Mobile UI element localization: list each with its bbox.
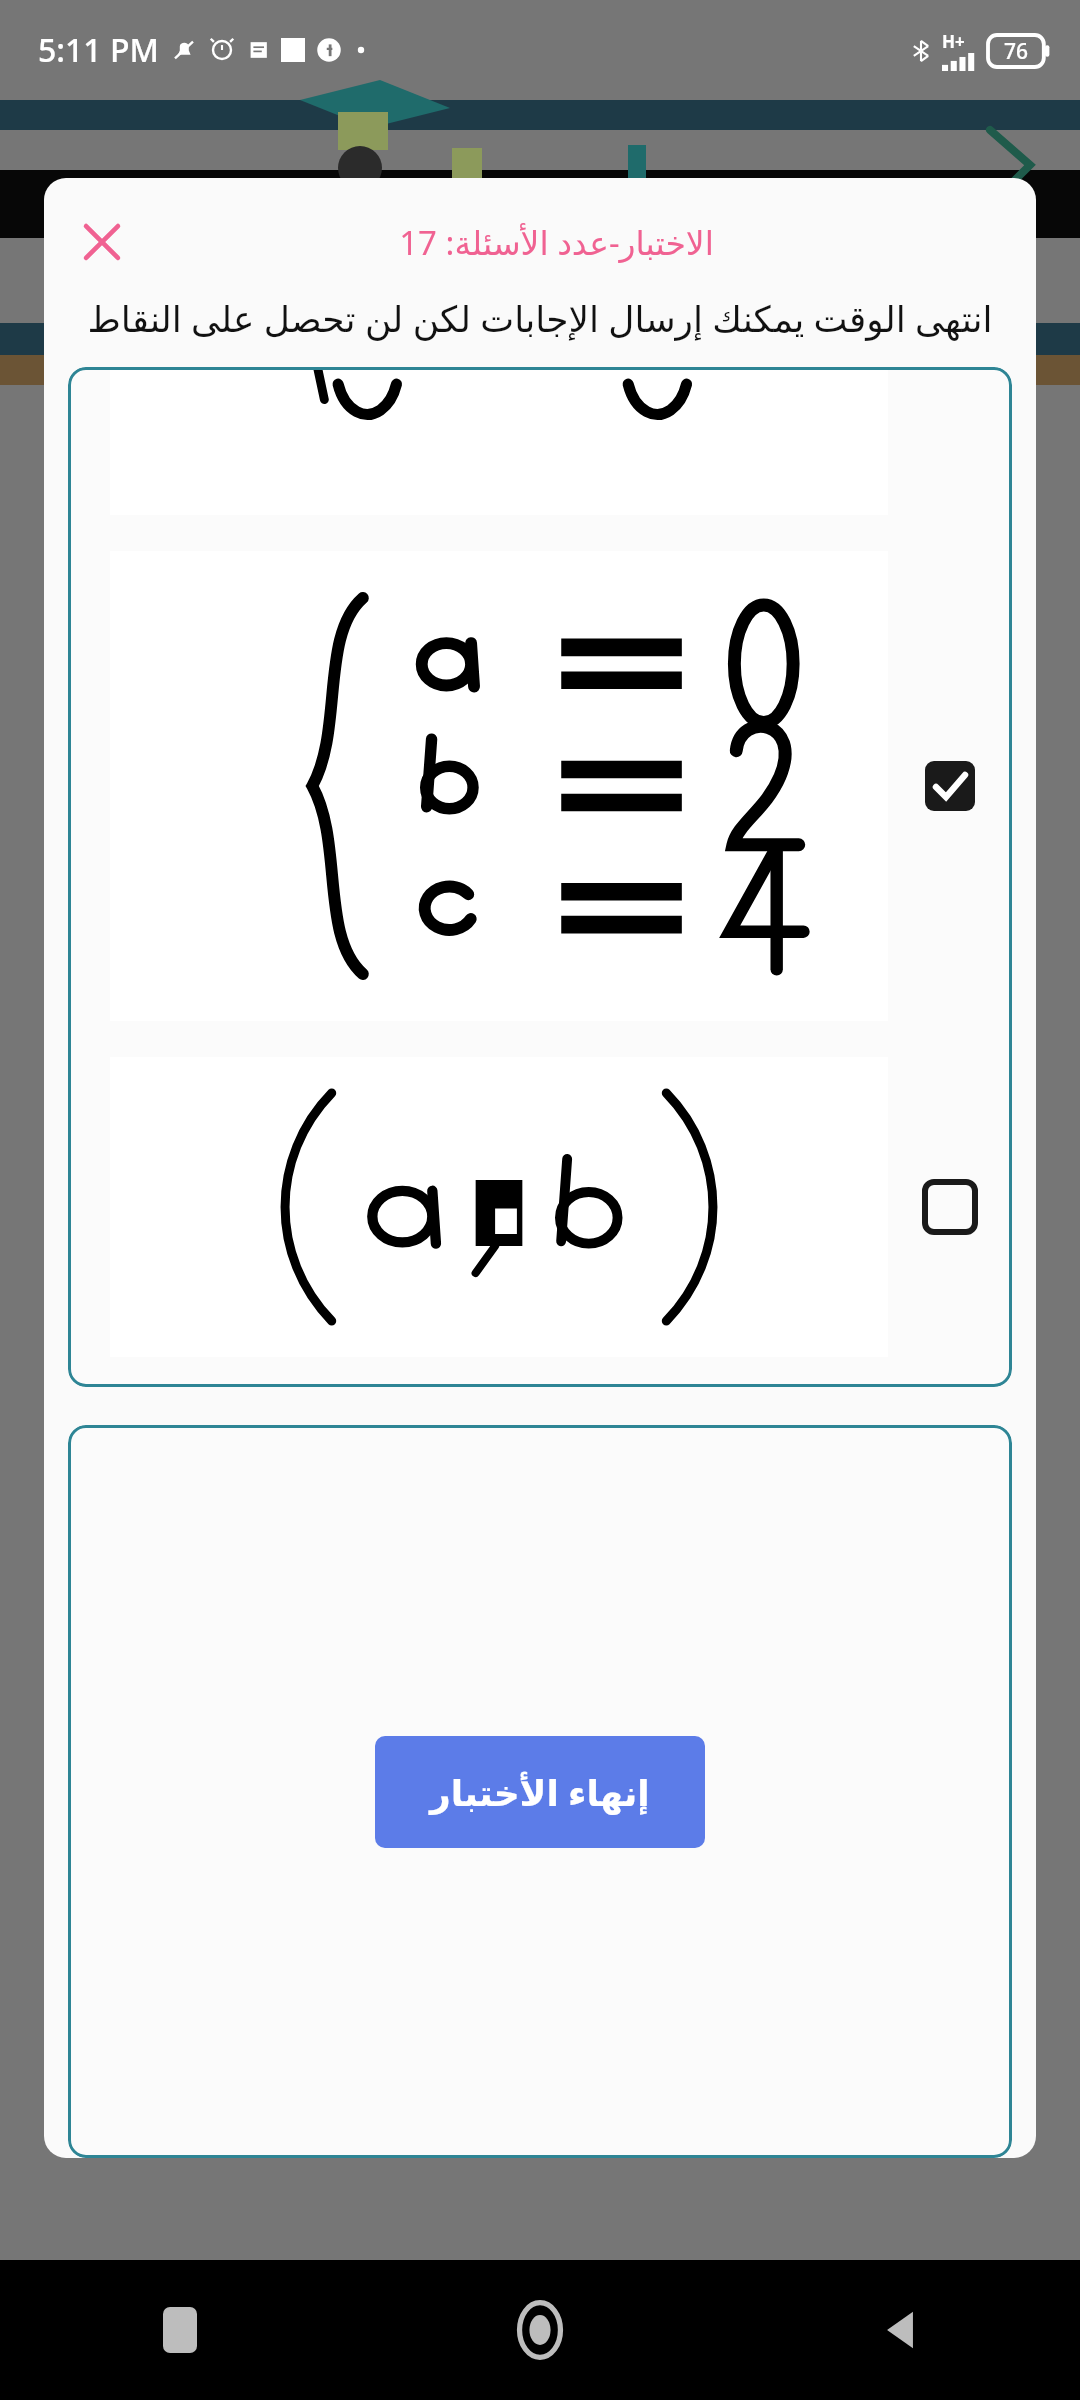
staticText: الاختبار-عدد الأسئلة: 17 [399, 220, 714, 265]
button[interactable]: إغلاق [64, 204, 140, 280]
staticText: H+ [942, 30, 965, 53]
button[interactable]: Back [720, 2260, 1080, 2400]
button[interactable]: Home [360, 2260, 720, 2400]
staticText: 5:11 PM [38, 28, 159, 72]
staticText: إنهاء الأختبار [430, 1768, 650, 1817]
staticText: 76 [1004, 37, 1029, 66]
button[interactable]: Recents [0, 2260, 360, 2400]
button[interactable] [68, 1057, 1012, 1357]
button[interactable] [68, 551, 1012, 1021]
button[interactable]: إنهاء الأختبار [375, 1736, 705, 1848]
button[interactable] [68, 367, 1012, 515]
staticText: انتهى الوقت يمكنك إرسال الإجابات لكن لن … [76, 294, 1004, 343]
